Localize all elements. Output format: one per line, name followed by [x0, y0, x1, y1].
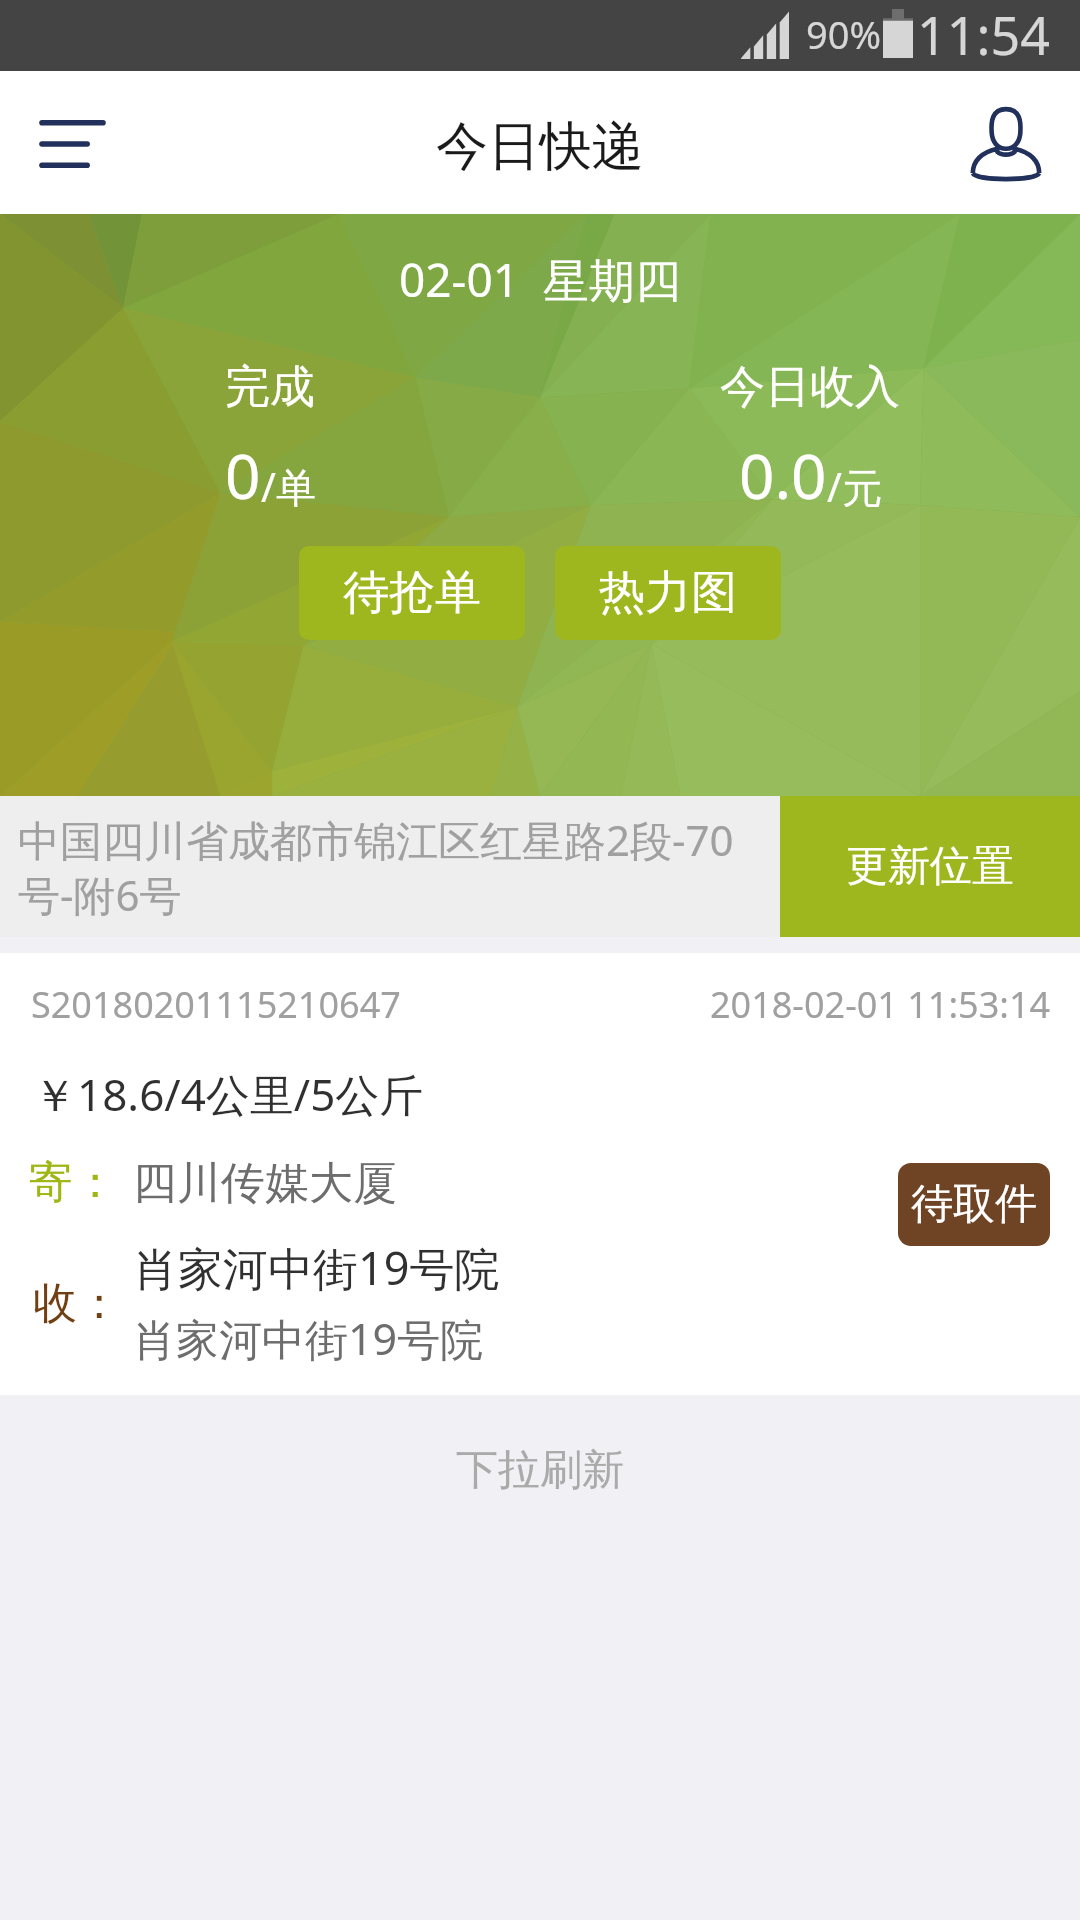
staticText: 今日快递 — [436, 114, 644, 180]
staticText: 收： — [33, 1276, 121, 1331]
staticText: S20180201115210647 — [31, 980, 401, 1029]
staticText: 热力图 — [599, 564, 737, 622]
staticText: 下拉刷新 — [456, 1444, 624, 1497]
staticText: 待抢单 — [343, 564, 481, 622]
staticText: 待取件 — [911, 1178, 1037, 1231]
staticText: 完成 — [225, 359, 315, 416]
staticText: 90% — [806, 8, 882, 60]
staticText: 肖家河中街19号院 — [133, 1309, 484, 1368]
button[interactable]: 热力图 — [555, 546, 781, 640]
button[interactable]: S20180201115210647 — [0, 953, 1080, 1395]
button[interactable]: 更新位置 — [780, 796, 1080, 937]
button[interactable]: Menu — [0, 71, 140, 214]
staticText: 0 — [225, 433, 261, 517]
staticText: /单 — [261, 459, 316, 514]
staticText: ￥18.6/4公里/5公斤 — [33, 1064, 424, 1124]
staticText: 四川传媒大厦 — [133, 1156, 397, 1211]
button[interactable]: 待取件 — [898, 1163, 1050, 1246]
staticText: 中国四川省成都市锦江区红星路2段-70号-附6号 — [18, 811, 766, 923]
button[interactable]: Profile — [940, 71, 1080, 214]
staticText: 0.0 — [739, 433, 827, 517]
staticText: 寄： — [29, 1155, 117, 1210]
staticText: 肖家河中街19号院 — [133, 1237, 500, 1298]
staticText: 02-01 星期四 — [399, 248, 681, 311]
staticText: 2018-02-01 11:53:14 — [710, 980, 1051, 1029]
button[interactable]: 待抢单 — [299, 546, 525, 640]
staticText: /元 — [827, 459, 882, 514]
staticText: 今日收入 — [720, 359, 900, 416]
staticText: 11:54 — [917, 0, 1050, 70]
staticText: 更新位置 — [846, 840, 1014, 893]
